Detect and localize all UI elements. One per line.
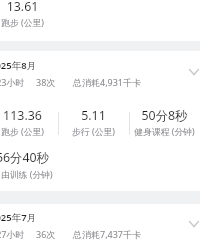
staticText: 健身课程 (分钟) [129, 126, 200, 138]
button[interactable]: 13.61 [0, 0, 58, 29]
button[interactable]: 2025年7月 [0, 211, 200, 240]
staticText: 步行 (公里) [58, 126, 129, 138]
staticText: 2025年8月 [0, 59, 37, 72]
button[interactable]: 113.36 [0, 107, 58, 138]
staticText: 2025年7月 [0, 211, 37, 224]
staticText: 127小时 [0, 228, 25, 240]
staticText: 总消耗4,931千卡 [73, 76, 142, 88]
staticText: 自由训练 (分钟) [0, 169, 58, 181]
staticText: 50分8秒 [129, 107, 200, 124]
staticText: 123小时 [0, 76, 25, 88]
button[interactable]: 56分40秒 [0, 149, 58, 181]
button[interactable]: 展开 [185, 63, 200, 81]
staticText: 跑步 (公里) [0, 126, 58, 138]
button[interactable]: 2025年8月 [0, 59, 200, 89]
staticText: 总消耗7,437千卡 [73, 228, 142, 240]
button[interactable]: 5.11 [58, 107, 129, 138]
staticText: 36次 [36, 228, 56, 240]
staticText: 113.36 [0, 107, 58, 124]
staticText: 跑步 (公里) [0, 17, 58, 29]
button[interactable]: 50分8秒 [129, 107, 200, 138]
staticText: 56分40秒 [0, 149, 58, 166]
staticText: 5.11 [58, 107, 129, 124]
staticText: 38次 [36, 76, 56, 88]
button[interactable]: 展开 [185, 215, 200, 233]
staticText: 13.61 [0, 0, 58, 15]
